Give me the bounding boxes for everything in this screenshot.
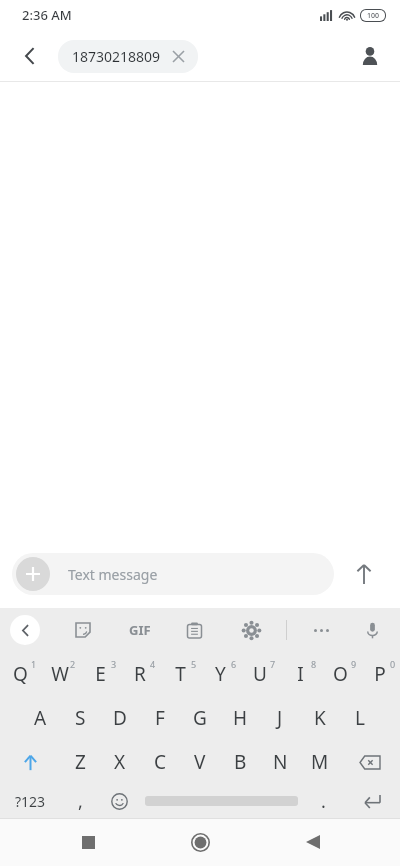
button[interactable]: Home [175,818,225,866]
button[interactable]: C [140,740,180,784]
staticText: 18730218809 [72,47,161,66]
staticText: P [374,661,386,687]
staticText: B [234,749,247,775]
staticText: Z [75,749,86,775]
staticText: . [321,789,326,814]
button[interactable]: Back [288,818,338,866]
button[interactable]: L [340,696,380,740]
button[interactable]: U [240,652,280,696]
button[interactable]: M [300,740,340,784]
staticText: 9 [351,658,357,670]
button[interactable]: T [160,652,200,696]
button[interactable]: Enter [343,784,400,818]
staticText: L [355,705,365,731]
button[interactable]: N [260,740,300,784]
staticText: , [78,789,83,814]
staticText: G [193,705,207,731]
button[interactable]: Recents [63,818,113,866]
button[interactable]: GIF [120,610,160,650]
button[interactable]: A [20,696,60,740]
button[interactable]: Attach [16,557,50,591]
staticText: 100 [367,11,380,21]
button[interactable]: Collapse toolbar [10,615,40,645]
staticText: H [233,705,248,731]
button[interactable]: Q [0,652,40,696]
button[interactable]: V [180,740,220,784]
staticText: J [277,705,283,731]
staticText: A [34,705,47,731]
button[interactable]: O [320,652,360,696]
staticText: M [311,749,329,775]
staticText: U [253,661,267,687]
button[interactable]: H [220,696,260,740]
button[interactable]: Contact profile [350,36,390,76]
staticText: R [134,661,146,687]
button[interactable]: Shift [0,740,60,784]
button[interactable]: D [100,696,140,740]
staticText: N [273,749,288,775]
button[interactable]: E [80,652,120,696]
button[interactable]: P [360,652,400,696]
staticText: T [175,661,186,687]
staticText: K [314,705,326,731]
button[interactable]: J [260,696,300,740]
button[interactable]: Voice input [354,612,390,648]
button[interactable]: W [40,652,80,696]
staticText: Q [13,661,28,687]
staticText: 0 [390,658,396,670]
staticText: X [114,749,126,775]
button[interactable]: S [60,696,100,740]
staticText: ?123 [15,792,46,811]
staticText: S [75,705,86,731]
button[interactable]: 18730218809 [58,40,198,73]
staticText: 3 [111,658,117,670]
button[interactable]: Send [342,552,386,596]
staticText: I [297,661,304,687]
button[interactable]: . [304,784,343,818]
button[interactable]: F [140,696,180,740]
staticText: Text message [68,565,158,584]
staticText: Y [215,661,226,687]
staticText: V [194,749,206,775]
button[interactable]: , [61,784,100,818]
button[interactable]: Attach [12,553,334,595]
button[interactable]: Stickers [66,613,100,647]
button[interactable]: B [220,740,260,784]
staticText: 4 [150,658,156,670]
button[interactable]: Y [200,652,240,696]
staticText: 8 [311,658,317,670]
staticText: O [333,661,348,687]
staticText: 6 [231,658,237,670]
button[interactable]: X [100,740,140,784]
staticText: D [113,705,127,731]
button[interactable]: Backspace [340,740,400,784]
button[interactable]: G [180,696,220,740]
staticText: F [155,705,165,731]
staticText: W [51,661,69,687]
button[interactable]: More options [303,612,339,648]
button[interactable]: ?123 [0,784,61,818]
staticText: GIF [129,621,151,639]
staticText: E [95,661,106,687]
button[interactable]: Back [10,36,50,76]
staticText: 5 [191,658,197,670]
staticText: C [154,749,167,775]
button[interactable]: R [120,652,160,696]
button[interactable]: Settings [234,613,268,647]
staticText: 1 [31,658,37,670]
staticText: 2:36 AM [22,6,72,24]
button[interactable]: K [300,696,340,740]
button[interactable]: I [280,652,320,696]
button[interactable]: Z [60,740,100,784]
button[interactable]: Clipboard [177,613,211,647]
button[interactable]: Emoji [100,784,139,818]
staticText: 2 [70,658,76,670]
staticText: 7 [270,658,276,670]
